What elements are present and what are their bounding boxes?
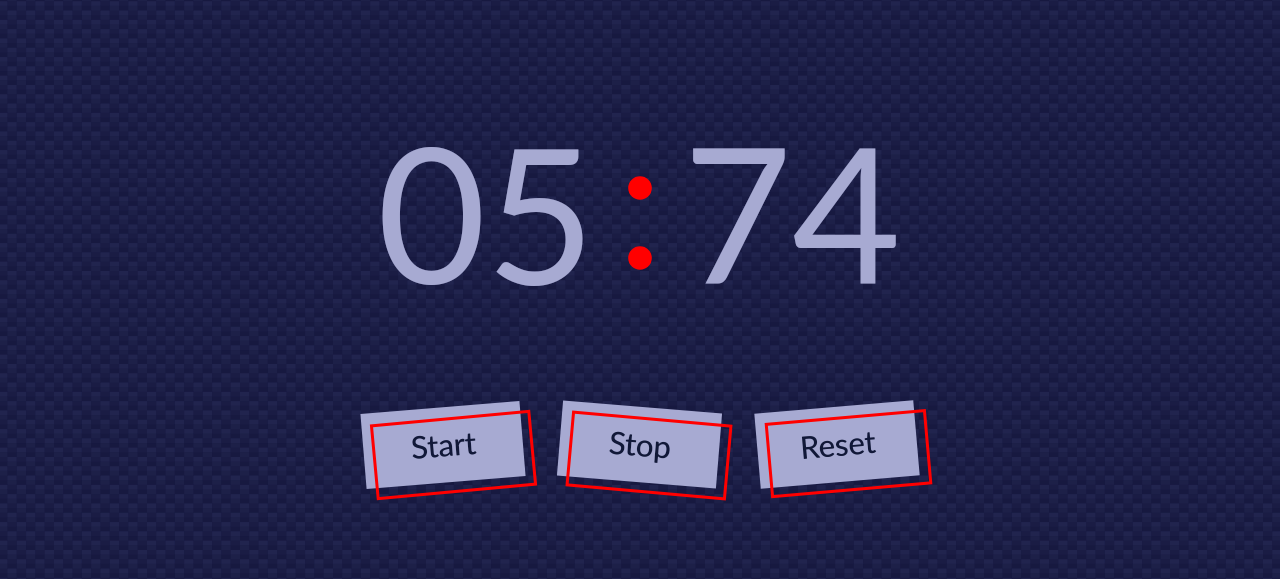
button[interactable]: Start <box>372 412 536 499</box>
button[interactable]: Reset <box>766 410 931 497</box>
button[interactable]: Stop <box>567 412 731 499</box>
